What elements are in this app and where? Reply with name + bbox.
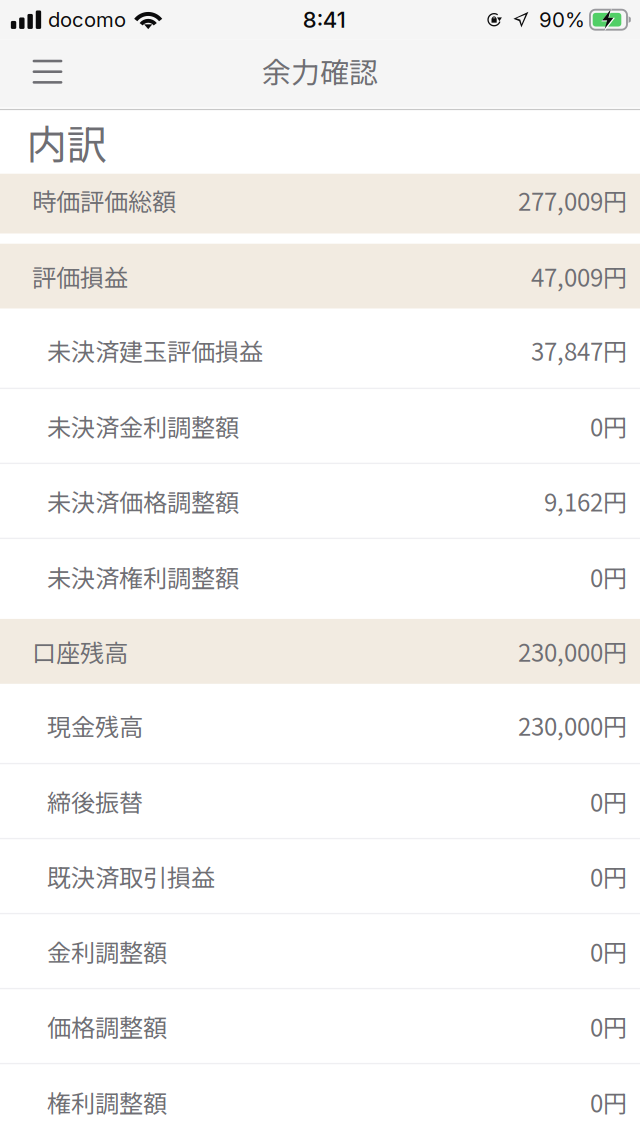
button[interactable]: 既決済取引損益 [0, 839, 640, 913]
staticText: 価格調整額 [47, 1009, 167, 1044]
staticText: 口座残高 [32, 634, 128, 669]
button[interactable]: 価格調整額 [0, 989, 640, 1063]
staticText: 277,009円 [518, 183, 627, 218]
button[interactable]: 未決済建玉評価損益 [0, 309, 640, 388]
button[interactable]: 時価評価総額 [0, 174, 640, 244]
staticText: 締後振替 [47, 784, 143, 819]
staticText: 0円 [590, 859, 627, 894]
staticText: 未決済建玉評価損益 [47, 333, 263, 368]
staticText: 権利調整額 [47, 1084, 167, 1119]
staticText: 47,009円 [531, 259, 627, 294]
staticText: 金利調整額 [47, 934, 167, 969]
staticText: 未決済金利調整額 [47, 408, 239, 443]
staticText: 0円 [590, 1085, 627, 1119]
button[interactable]: 未決済金利調整額 [0, 389, 640, 463]
button[interactable]: 未決済価格調整額 [0, 464, 640, 538]
staticText: 0円 [590, 559, 627, 594]
staticText: 時価評価総額 [32, 183, 176, 218]
button[interactable]: 金利調整額 [0, 914, 640, 988]
button[interactable]: 口座残高 [0, 619, 640, 684]
staticText: 8:41 [303, 6, 346, 33]
button[interactable]: 未決済権利調整額 [0, 539, 640, 619]
staticText: 37,847円 [531, 333, 627, 368]
staticText: 現金残高 [47, 708, 143, 743]
staticText: 内訳 [26, 113, 106, 171]
staticText: docomo [48, 7, 126, 32]
staticText: 9,162円 [544, 484, 627, 518]
staticText: 90% [539, 7, 585, 32]
staticText: 230,000円 [518, 634, 627, 669]
button[interactable]: 現金残高 [0, 684, 640, 763]
staticText: 未決済価格調整額 [47, 483, 239, 518]
button[interactable]: 評価損益 [0, 244, 640, 309]
button[interactable]: 締後振替 [0, 764, 640, 838]
staticText: 未決済権利調整額 [47, 559, 239, 594]
staticText: 0円 [590, 784, 627, 819]
staticText: 既決済取引損益 [47, 859, 215, 894]
staticText: 0円 [590, 934, 627, 969]
staticText: 評価損益 [32, 259, 128, 294]
staticText: 0円 [590, 409, 627, 443]
button[interactable]: Menu [3, 40, 92, 108]
staticText: 230,000円 [518, 708, 627, 743]
staticText: 余力確認 [262, 50, 378, 92]
button[interactable]: 権利調整額 [0, 1064, 640, 1138]
staticText: 0円 [590, 1009, 627, 1044]
